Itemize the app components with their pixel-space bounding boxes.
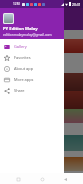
button[interactable]: Gallery (0, 41, 64, 52)
button[interactable]: About app (0, 63, 64, 74)
button[interactable]: More apps (0, 74, 64, 85)
button[interactable]: Share (0, 85, 64, 96)
staticText: More apps (14, 77, 34, 82)
button[interactable]: Recents (13, 174, 23, 184)
staticText: 20:31 (72, 2, 81, 7)
button[interactable]: Favorites (0, 52, 64, 63)
staticText: 12M (13, 2, 20, 6)
staticText: editionmalaymalay@gmail.com (3, 32, 52, 36)
button[interactable]: Back (60, 174, 70, 184)
staticText: Favorites (14, 55, 31, 60)
staticText: About app (14, 66, 34, 71)
staticText: Share (14, 88, 25, 93)
button[interactable]: Home (37, 174, 47, 184)
staticText: PY Edition Malay (3, 26, 38, 32)
staticText: Gallery (14, 44, 27, 49)
